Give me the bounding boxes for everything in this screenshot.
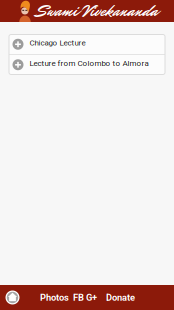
staticText: FB: [73, 292, 84, 303]
button[interactable]: Chicago Lecture: [9, 34, 165, 54]
staticText: Donate: [106, 292, 135, 303]
staticText: Swami Vivekananda: [37, 0, 158, 23]
staticText: Photos: [40, 292, 69, 303]
button[interactable]: Donate: [102, 285, 139, 310]
staticText: G+: [86, 292, 97, 303]
staticText: Lecture from Colombo to Almora: [29, 59, 148, 68]
button[interactable]: Photos: [38, 285, 70, 310]
button[interactable]: FB: [70, 285, 85, 310]
button[interactable]: Lecture from Colombo to Almora: [9, 55, 165, 74]
staticText: Chicago Lecture: [29, 38, 85, 47]
button[interactable]: G+: [85, 285, 102, 310]
button[interactable]: Home: [0, 285, 25, 310]
